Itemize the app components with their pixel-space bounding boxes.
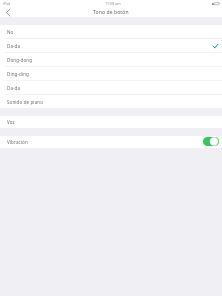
- button[interactable]: Back: [0, 7, 16, 17]
- staticText: Da-da: [7, 85, 21, 91]
- button[interactable]: Vibración activada: [203, 137, 219, 146]
- staticText: iPad: [3, 1, 11, 6]
- staticText: Sonido de piano: [7, 99, 44, 105]
- staticText: Ding-ding: [7, 71, 30, 77]
- staticText: Da-da: [7, 43, 21, 49]
- staticText: Voz: [7, 119, 15, 125]
- staticText: 11:58 am: [105, 1, 121, 6]
- button[interactable]: Da-da: [0, 39, 222, 52]
- staticText: Dong-dong: [7, 57, 33, 63]
- button[interactable]: Sonido de piano: [0, 95, 222, 108]
- button[interactable]: Da-da: [0, 81, 222, 94]
- staticText: Vibración: [7, 139, 28, 145]
- button[interactable]: Voz: [0, 116, 222, 128]
- staticText: No: [7, 29, 14, 35]
- staticText: Tono de botón: [93, 9, 129, 16]
- button[interactable]: No: [0, 25, 222, 38]
- button[interactable]: Dong-dong: [0, 53, 222, 66]
- button[interactable]: Ding-ding: [0, 67, 222, 80]
